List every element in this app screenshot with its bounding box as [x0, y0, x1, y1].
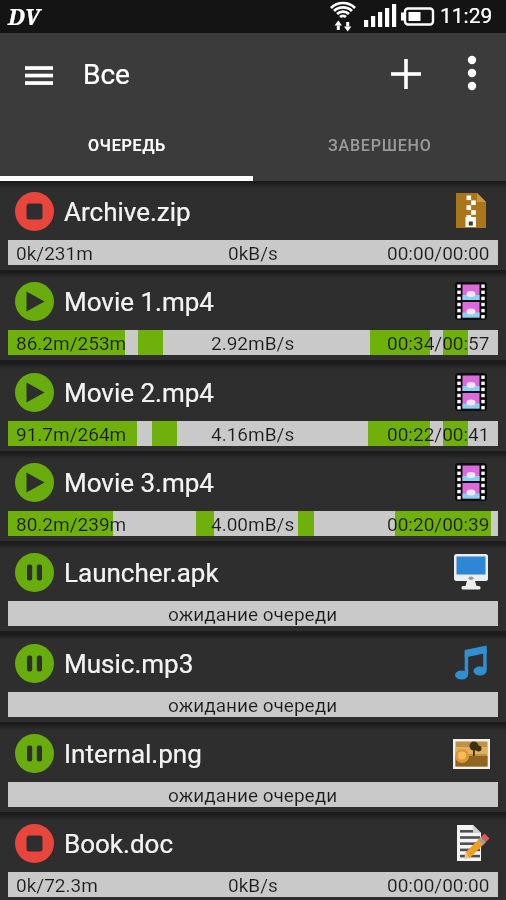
staticText: ЗАВЕРШЕНО: [328, 136, 432, 155]
staticText: Internal.png: [64, 739, 202, 769]
staticText: Movie 3.mp4: [64, 468, 214, 498]
staticText: 00:00/00:00: [387, 242, 490, 264]
staticText: 00:22/00:41: [387, 423, 490, 445]
staticText: 00:00/00:00: [387, 874, 490, 896]
button[interactable]: [384, 52, 428, 96]
staticText: Movie 1.mp4: [64, 287, 214, 317]
button[interactable]: [10, 53, 66, 97]
staticText: 0kB/s: [228, 874, 278, 896]
button[interactable]: [452, 52, 492, 96]
button[interactable]: Music.mp3: [0, 635, 506, 722]
staticText: 00:20/00:39: [387, 513, 490, 535]
staticText: Music.mp3: [64, 649, 194, 679]
staticText: Movie 2.mp4: [64, 378, 214, 408]
staticText: 0kB/s: [228, 242, 278, 264]
staticText: DV: [8, 1, 40, 31]
staticText: 91.7m/264m: [16, 423, 127, 445]
staticText: 86.2m/253m: [16, 332, 127, 354]
staticText: Archive.zip: [64, 197, 191, 227]
button[interactable]: Launcher.apk: [0, 544, 506, 631]
staticText: Все: [83, 58, 130, 91]
staticText: 2.92mB/s: [211, 332, 295, 354]
staticText: 4.00mB/s: [211, 513, 295, 535]
button[interactable]: Archive.zip: [0, 183, 506, 270]
staticText: Book.doc: [64, 829, 173, 859]
staticText: 00:34/00:57: [387, 332, 490, 354]
staticText: ожидание очереди: [168, 784, 338, 806]
staticText: 11:29: [440, 4, 493, 29]
staticText: 4.16mB/s: [211, 423, 295, 445]
staticText: ОЧЕРЕДЬ: [88, 136, 166, 155]
button[interactable]: ОЧЕРЕДЬ: [0, 112, 253, 181]
staticText: Launcher.apk: [64, 558, 219, 588]
button[interactable]: Movie 3.mp4: [0, 454, 506, 541]
staticText: 0k/72.3m: [16, 874, 98, 896]
button[interactable]: Movie 1.mp4: [0, 273, 506, 360]
button[interactable]: ЗАВЕРШЕНО: [253, 112, 506, 181]
staticText: ожидание очереди: [168, 694, 338, 716]
staticText: 0k/231m: [16, 242, 93, 264]
button[interactable]: Book.doc: [0, 815, 506, 900]
staticText: ожидание очереди: [168, 603, 338, 625]
button[interactable]: Movie 2.mp4: [0, 364, 506, 451]
button[interactable]: Internal.png: [0, 725, 506, 812]
staticText: 80.2m/239m: [16, 513, 127, 535]
